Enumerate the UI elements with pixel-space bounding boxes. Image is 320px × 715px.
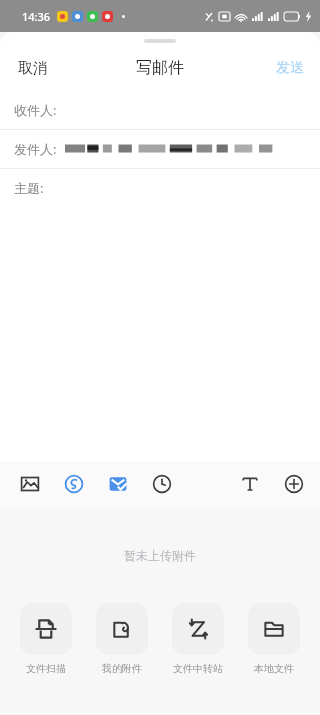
button[interactable]: 收件人: xyxy=(0,91,320,129)
button[interactable]: Schedule send xyxy=(140,461,184,507)
staticText: 文件扫描 xyxy=(26,662,66,675)
staticText: 我的附件 xyxy=(102,662,142,675)
button[interactable]: 发件人: xyxy=(0,130,320,168)
staticText: 取消 xyxy=(18,59,48,78)
button[interactable]: Text format xyxy=(228,461,272,507)
staticText: 发送 xyxy=(276,59,304,77)
button[interactable]: 文件扫描 xyxy=(14,603,78,675)
button[interactable]: Insert image xyxy=(8,461,52,507)
staticText: 14:36 xyxy=(22,9,51,24)
staticText: 发件人: xyxy=(14,140,57,158)
staticText: 文件中转站 xyxy=(173,662,223,675)
staticText: 本地文件 xyxy=(254,662,294,675)
staticText: 写邮件 xyxy=(136,58,184,78)
staticText: 收件人: xyxy=(14,101,57,119)
button[interactable]: 取消 xyxy=(0,51,66,86)
staticText: 主题: xyxy=(14,179,44,197)
button[interactable]: 主题: xyxy=(0,169,320,207)
staticText: 暂未上传附件 xyxy=(124,548,196,563)
button[interactable]: 文件中转站 xyxy=(166,603,230,675)
button[interactable]: 我的附件 xyxy=(90,603,154,675)
button[interactable]: 发送 xyxy=(260,51,320,85)
button[interactable]: More xyxy=(272,461,316,507)
button[interactable]: Mail read receipt xyxy=(96,461,140,507)
button[interactable]: 本地文件 xyxy=(242,603,306,675)
button[interactable]: Quick reply xyxy=(52,461,96,507)
